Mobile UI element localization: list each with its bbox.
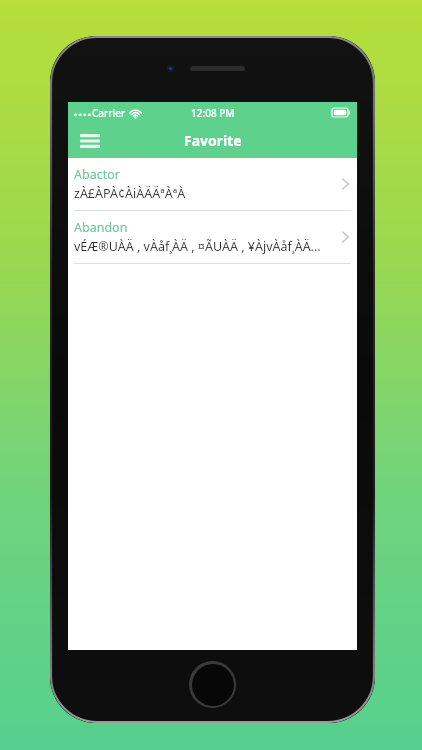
staticText: Carrier: [92, 106, 126, 120]
staticText: Abactor: [74, 166, 120, 183]
button[interactable]: Home: [189, 661, 236, 708]
button[interactable]: Menu: [76, 127, 104, 155]
staticText: Favorite: [184, 131, 242, 150]
staticText: zÀ£ÀPÀ¢ÀiÀÄÄªÀªÀ: [74, 185, 186, 202]
button[interactable]: Abactor: [68, 158, 357, 210]
staticText: vÉÆ®UÀÄ , vÀåf¸ÀÄ , ¤ÃUÀÄ , ¥ÀjvÀåf¸ÀÄ..…: [74, 238, 321, 255]
button[interactable]: Abandon: [68, 211, 357, 263]
staticText: Abandon: [74, 219, 128, 236]
staticText: 12:08 PM: [191, 106, 235, 120]
